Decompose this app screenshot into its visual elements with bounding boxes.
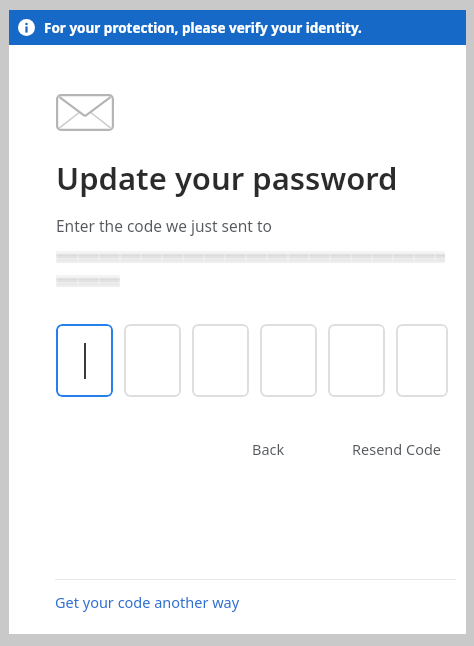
button[interactable]: Information <box>9 10 466 45</box>
button[interactable]: Back <box>246 435 291 463</box>
other: Information <box>18 19 35 36</box>
staticText: Back <box>252 439 285 459</box>
button[interactable]: Code digit entry <box>192 324 249 397</box>
staticText: For your protection, please verify your … <box>44 19 362 37</box>
staticText: Enter the code we just sent to <box>56 215 272 236</box>
button[interactable]: Resend Code <box>346 435 448 463</box>
button[interactable]: Code digit entry <box>328 324 385 397</box>
button[interactable]: Code digit entry <box>56 324 113 397</box>
button[interactable]: Get your code another way <box>49 580 246 624</box>
staticText: Update your password <box>56 157 398 199</box>
staticText: Resend Code <box>352 439 442 459</box>
button[interactable]: Code digit entry <box>396 324 448 397</box>
button[interactable]: Code digit entry <box>260 324 317 397</box>
button[interactable]: Code digit entry <box>124 324 181 397</box>
staticText: Get your code another way <box>55 592 240 612</box>
other: Email <box>56 94 114 131</box>
